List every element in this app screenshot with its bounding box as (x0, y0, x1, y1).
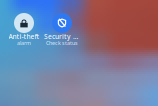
button[interactable]: Security and privacy, Check status (44, 13, 80, 46)
button[interactable]: Anti-theft alarm (6, 13, 42, 46)
staticText: alarm (17, 39, 31, 47)
staticText: Anti-theft (8, 32, 39, 41)
staticText: Security and... (44, 32, 80, 41)
staticText: Check status (46, 39, 78, 47)
